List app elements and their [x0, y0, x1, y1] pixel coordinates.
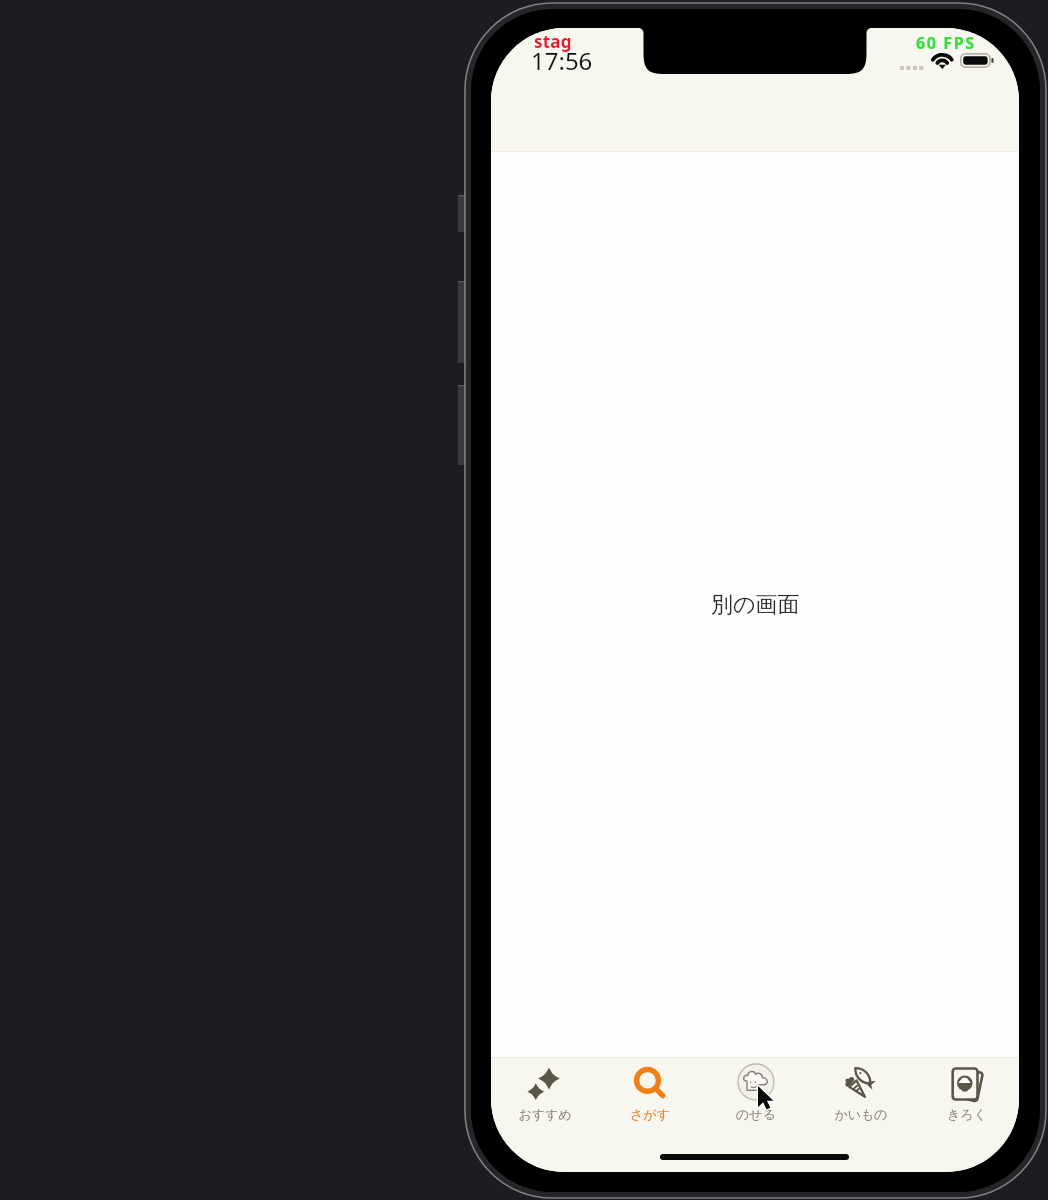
staticText: stag [534, 30, 572, 53]
staticText: 17:56 [531, 44, 593, 77]
button[interactable]: Records [914, 1057, 1019, 1157]
staticText: おすすめ [518, 1106, 572, 1122]
button[interactable]: Search [597, 1057, 702, 1157]
staticText: さがす [630, 1106, 670, 1122]
button[interactable]: Shopping [808, 1057, 913, 1157]
staticText: のせる [736, 1106, 776, 1122]
button[interactable]: Post recipe [703, 1057, 808, 1157]
staticText: かいもの [834, 1106, 888, 1122]
staticText: 別の画面 [711, 591, 800, 619]
staticText: きろく [947, 1106, 987, 1122]
staticText: 60 FPS [916, 32, 976, 54]
button[interactable]: Recommended [492, 1057, 597, 1157]
